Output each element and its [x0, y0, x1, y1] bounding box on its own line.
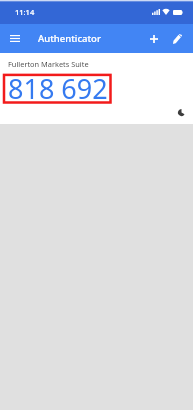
- button[interactable]: Open navigation drawer: [3, 26, 27, 50]
- button[interactable]: Fullerton Markets Suite: [0, 53, 193, 124]
- button[interactable]: Add account: [142, 27, 166, 51]
- staticText: Fullerton Markets Suite: [8, 59, 89, 69]
- staticText: 11:14: [15, 7, 35, 17]
- staticText: 818 692: [8, 70, 108, 107]
- staticText: Authenticator: [38, 32, 101, 45]
- button[interactable]: Edit accounts: [165, 27, 189, 51]
